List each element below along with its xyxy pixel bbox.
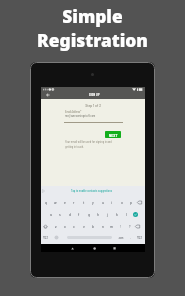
button[interactable]: n <box>98 221 107 232</box>
staticText: k <box>116 212 118 217</box>
staticText: o <box>121 200 123 205</box>
staticText: r <box>73 200 75 205</box>
staticText: n <box>102 224 104 229</box>
staticText: Your email will be used for signing in a… <box>65 140 112 148</box>
button[interactable]: ?123 <box>41 232 50 243</box>
staticText: ! <box>120 225 122 229</box>
staticText: ?123 <box>43 236 48 239</box>
button[interactable]: y <box>88 197 97 208</box>
staticText: ? <box>129 225 131 229</box>
staticText: Email Address* <box>65 110 82 113</box>
staticText: ?123 <box>137 236 142 239</box>
button[interactable]: z <box>51 221 60 232</box>
staticText: c <box>73 224 75 229</box>
button[interactable]: d <box>65 209 74 220</box>
button[interactable]: r <box>69 197 78 208</box>
staticText: q <box>45 200 47 205</box>
staticText: .com <box>118 236 124 239</box>
button[interactable]: p <box>126 197 135 208</box>
button[interactable]: .com <box>116 232 125 243</box>
button[interactable]: ?123 <box>135 232 144 243</box>
button[interactable]: x <box>60 221 69 232</box>
button[interactable]: e <box>60 197 69 208</box>
staticText: i <box>111 200 112 205</box>
button[interactable]: a <box>46 209 55 220</box>
staticText: x <box>64 224 66 229</box>
staticText: Step 1 of 3 <box>41 103 145 108</box>
button[interactable]: s <box>55 209 64 220</box>
staticText: a <box>50 212 52 217</box>
staticText: Registration <box>37 29 148 53</box>
staticText: f <box>78 212 80 217</box>
button[interactable]: ! <box>116 221 125 232</box>
staticText: w <box>54 200 57 205</box>
staticText: j <box>107 212 108 217</box>
staticText: s <box>59 212 61 217</box>
staticText: l <box>126 212 127 217</box>
staticText: v <box>83 224 85 229</box>
button[interactable]: Backspace <box>133 221 142 232</box>
staticText: t <box>83 200 85 205</box>
button[interactable]: c <box>69 221 78 232</box>
staticText: SIGN UP <box>89 93 100 96</box>
staticText: me@awesomingstuff.com <box>65 114 96 118</box>
button[interactable]: Backspace <box>135 197 144 208</box>
button[interactable]: w <box>51 197 60 208</box>
staticText: p <box>130 200 132 205</box>
button[interactable]: NEXT <box>105 131 121 138</box>
button[interactable]: v <box>79 221 88 232</box>
button[interactable]: Recents <box>110 244 118 252</box>
button[interactable]: i <box>107 197 116 208</box>
staticText: . <box>130 236 131 240</box>
button[interactable]: o <box>117 197 126 208</box>
staticText: z <box>55 224 57 229</box>
button[interactable]: Back <box>44 91 52 98</box>
button[interactable]: j <box>103 209 112 220</box>
staticText: Tap to enable contacts suggestions <box>71 189 113 193</box>
staticText: b <box>92 224 94 229</box>
button[interactable]: k <box>112 209 121 220</box>
button[interactable]: b <box>88 221 97 232</box>
button[interactable]: m <box>107 221 116 232</box>
button[interactable]: t <box>79 197 88 208</box>
button[interactable]: Back <box>68 244 76 252</box>
staticText: g <box>88 212 90 217</box>
staticText: h <box>97 212 99 217</box>
button[interactable]: f <box>74 209 83 220</box>
button[interactable]: ? <box>125 221 134 232</box>
staticText: Simple <box>62 5 123 29</box>
staticText: m <box>110 224 113 229</box>
button[interactable]: l <box>122 209 131 220</box>
staticText: NEXT <box>109 133 118 137</box>
button[interactable]: q <box>41 197 50 208</box>
staticText: y <box>92 200 94 205</box>
button[interactable]: Enter <box>133 212 138 217</box>
staticText: u <box>102 200 104 205</box>
button[interactable]: Shift <box>41 221 50 232</box>
button[interactable]: u <box>98 197 107 208</box>
button[interactable]: h <box>93 209 102 220</box>
button[interactable]: Emoji <box>52 232 61 243</box>
button[interactable]: Home <box>90 244 98 252</box>
button[interactable]: g <box>84 209 93 220</box>
staticText: e <box>64 200 66 205</box>
staticText: d <box>69 212 71 217</box>
